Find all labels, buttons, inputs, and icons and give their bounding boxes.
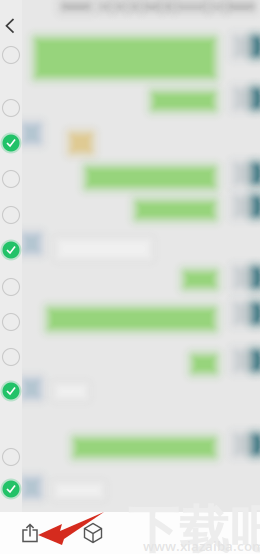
button[interactable]: Select message — [0, 310, 22, 334]
button[interactable]: Add to favourites — [60, 512, 126, 554]
staticText: 下载吧 — [128, 499, 260, 554]
button[interactable]: Select message — [0, 203, 22, 227]
button[interactable]: Back — [0, 0, 34, 48]
button[interactable]: Select message — [0, 43, 22, 67]
button[interactable]: Select message — [0, 345, 22, 369]
button[interactable]: Select message — [0, 238, 22, 262]
staticText: www.xiazaiba.com — [143, 537, 260, 554]
button[interactable]: Select message — [0, 445, 22, 469]
button[interactable]: Share — [0, 512, 60, 554]
button[interactable]: Select message — [0, 379, 22, 403]
button[interactable]: Select message — [0, 167, 22, 191]
button[interactable]: Select message — [0, 477, 22, 501]
button[interactable]: Select message — [0, 96, 22, 120]
button[interactable]: Select message — [0, 131, 22, 155]
button[interactable]: Select message — [0, 275, 22, 299]
